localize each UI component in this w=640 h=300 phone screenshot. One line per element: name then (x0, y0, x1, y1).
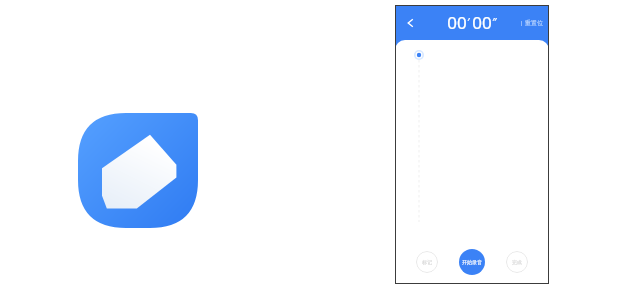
staticText: 完成 (512, 259, 522, 265)
staticText: | 重置位 (520, 19, 543, 27)
staticText: 00 (447, 11, 467, 34)
staticText: ′ (467, 14, 470, 29)
button[interactable]: 开始录音 (459, 249, 485, 275)
staticText: 开始录音 (462, 259, 482, 265)
button[interactable]: 标记 (416, 251, 438, 273)
staticText: ″ (492, 14, 497, 29)
button[interactable]: 完成 (506, 251, 528, 273)
staticText: 00 (472, 11, 492, 34)
staticText: 标记 (422, 259, 432, 265)
other: Notes app icon (78, 113, 198, 228)
button[interactable]: | 重置位 (520, 19, 543, 27)
button[interactable]: Back (401, 13, 421, 33)
